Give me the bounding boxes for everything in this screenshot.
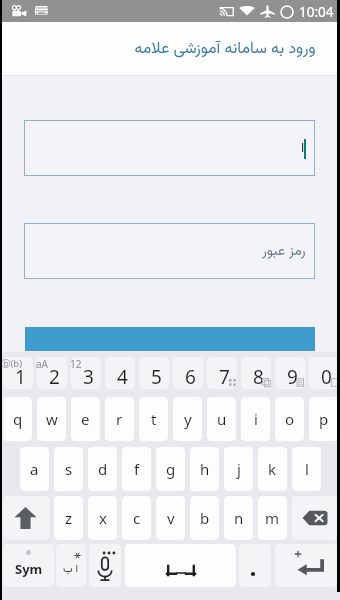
- button[interactable]: ا: [24, 120, 315, 176]
- staticText: 1: [15, 364, 26, 389]
- button[interactable]: u: [207, 397, 236, 441]
- staticText: 0: [321, 364, 332, 389]
- button[interactable]: [239, 544, 271, 587]
- button[interactable]: 0: [309, 357, 339, 389]
- staticText: p: [319, 409, 329, 429]
- staticText: ا ب: [63, 561, 79, 578]
- button[interactable]: Shift: [3, 496, 50, 540]
- button[interactable]: v: [156, 496, 185, 540]
- button[interactable]: t: [139, 397, 168, 441]
- staticText: Sym: [15, 560, 43, 578]
- staticText: d: [98, 459, 108, 479]
- staticText: 9: [287, 364, 298, 389]
- staticText: v: [167, 508, 175, 528]
- button[interactable]: 2: [37, 357, 67, 389]
- button[interactable]: s: [54, 447, 83, 491]
- staticText: h: [200, 459, 210, 479]
- staticText: w: [46, 409, 58, 429]
- button[interactable]: w: [37, 397, 66, 441]
- staticText: r: [116, 409, 123, 429]
- staticText: ⓑ(b): [1, 357, 23, 370]
- button[interactable]: d: [88, 447, 117, 491]
- button[interactable]: m: [258, 496, 287, 540]
- button[interactable]: 3: [71, 357, 101, 389]
- button[interactable]: p: [309, 397, 338, 441]
- button[interactable]: 6: [173, 357, 203, 389]
- staticText: 10:04: [299, 3, 334, 21]
- staticText: j: [237, 459, 241, 479]
- staticText: f: [134, 459, 140, 479]
- staticText: رمز عبور: [262, 241, 306, 263]
- button[interactable]: j: [224, 447, 253, 491]
- button[interactable]: رمز عبور: [24, 223, 315, 279]
- button[interactable]: ا ب: [56, 544, 86, 587]
- button[interactable]: g: [156, 447, 185, 491]
- staticText: 3: [83, 364, 94, 389]
- staticText: 2: [49, 364, 60, 389]
- staticText: x: [99, 508, 107, 528]
- button[interactable]: q: [3, 397, 32, 441]
- staticText: 12: [70, 357, 82, 371]
- staticText: n: [234, 508, 244, 528]
- staticText: l: [305, 459, 309, 479]
- staticText: 8: [253, 364, 264, 389]
- staticText: c: [133, 508, 141, 528]
- button[interactable]: Enter: [275, 544, 337, 587]
- staticText: a: [30, 459, 39, 479]
- button[interactable]: k: [258, 447, 287, 491]
- button[interactable]: z: [54, 496, 83, 540]
- button[interactable]: 9: [275, 357, 305, 389]
- staticText: 6: [185, 364, 196, 389]
- staticText: ا: [301, 138, 305, 160]
- staticText: 5: [151, 364, 162, 389]
- button[interactable]: 5: [139, 357, 169, 389]
- staticText: i: [254, 409, 258, 429]
- staticText: z: [65, 508, 73, 528]
- staticText: m: [265, 508, 280, 528]
- button[interactable]: Voice input: [89, 544, 121, 587]
- button[interactable]: e: [71, 397, 100, 441]
- staticText: e: [81, 409, 90, 429]
- button[interactable]: i: [241, 397, 270, 441]
- button[interactable]: 8: [241, 357, 271, 389]
- button[interactable]: r: [105, 397, 134, 441]
- button[interactable]: y: [173, 397, 202, 441]
- button[interactable]: h: [190, 447, 219, 491]
- staticText: b: [200, 508, 210, 528]
- button[interactable]: 1: [3, 357, 33, 389]
- staticText: 7: [219, 364, 230, 389]
- staticText: q: [13, 409, 23, 429]
- button[interactable]: a: [20, 447, 49, 491]
- button[interactable]: Sym: [3, 544, 54, 587]
- button[interactable]: o: [275, 397, 304, 441]
- staticText: aA: [36, 357, 48, 371]
- button[interactable]: c: [122, 496, 151, 540]
- button[interactable]: l: [292, 447, 321, 491]
- button[interactable]: b: [190, 496, 219, 540]
- button[interactable]: 7: [207, 357, 237, 389]
- staticText: t: [151, 409, 157, 429]
- button[interactable]: x: [88, 496, 117, 540]
- button[interactable]: Space: [125, 544, 236, 587]
- staticText: g: [166, 459, 176, 479]
- button[interactable]: n: [224, 496, 253, 540]
- staticText: 4: [117, 364, 128, 389]
- staticText: k: [268, 459, 277, 479]
- staticText: u: [217, 409, 227, 429]
- button[interactable]: f: [122, 447, 151, 491]
- button[interactable]: 4: [105, 357, 135, 389]
- button[interactable]: Backspace: [292, 496, 337, 540]
- staticText: s: [65, 459, 73, 479]
- staticText: y: [184, 409, 192, 429]
- staticText: o: [285, 409, 295, 429]
- staticText: ورود به سامانه آموزشی علامه: [134, 37, 316, 62]
